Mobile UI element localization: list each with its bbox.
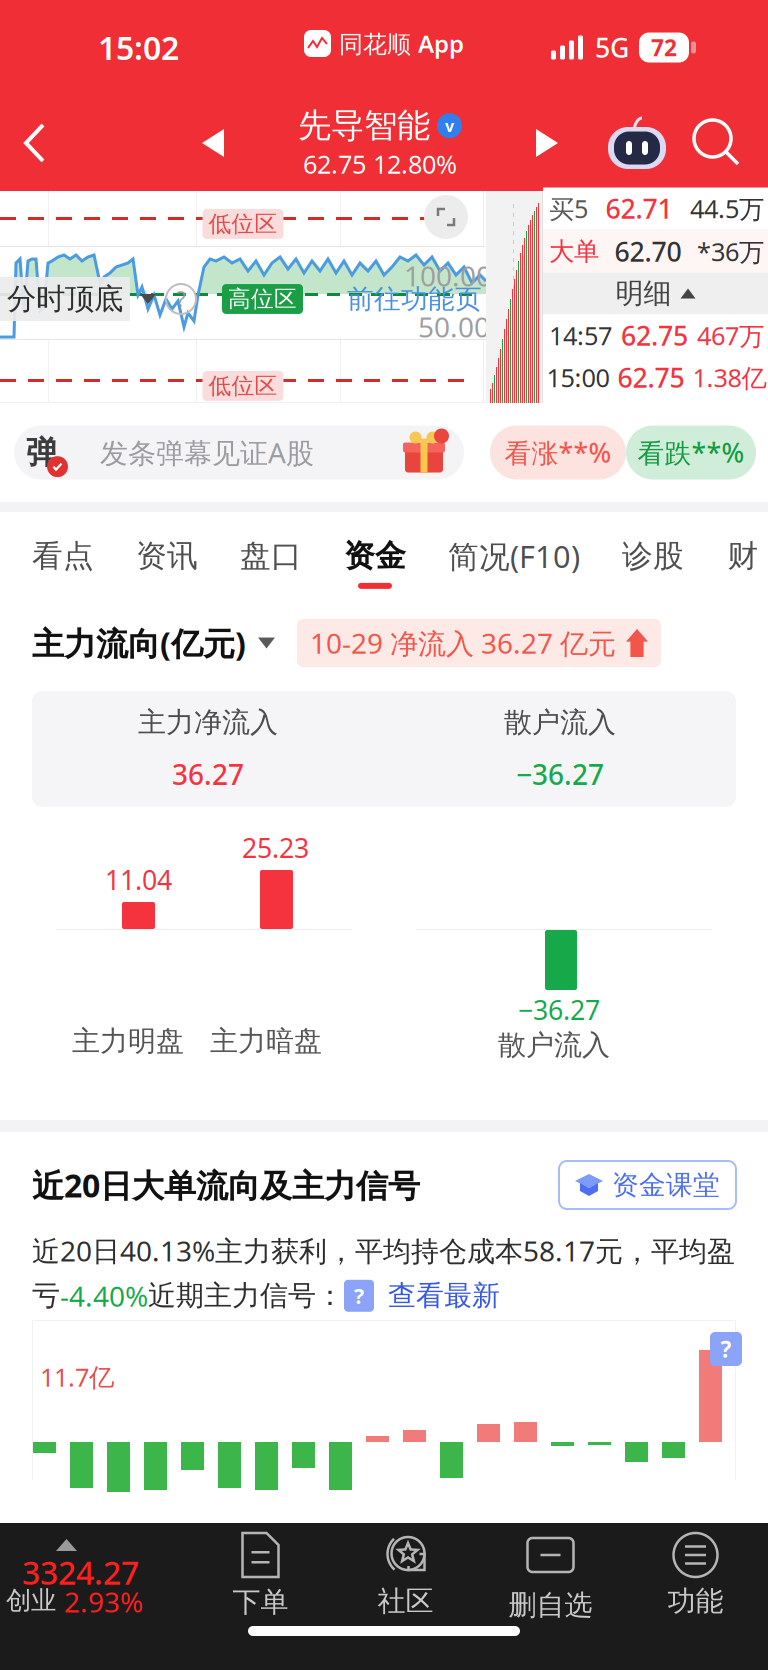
staticText: 11.04 <box>105 862 172 897</box>
staticText: 主力明盘 <box>72 1024 184 1058</box>
staticText: 散户流入 <box>504 705 616 740</box>
button[interactable]: AI assistant <box>606 116 668 170</box>
button[interactable]: Previous stock <box>188 115 238 171</box>
button[interactable]: 财 <box>705 527 768 589</box>
staticText: 5G <box>595 30 629 65</box>
button[interactable]: 资金课堂 <box>559 1161 736 1209</box>
staticText: 72 <box>651 32 677 62</box>
staticText: 低位区 <box>208 210 277 238</box>
button[interactable]: 资讯 <box>115 527 219 589</box>
staticText: −36.27 <box>516 756 604 793</box>
staticText: 62.75 <box>617 360 684 395</box>
staticText: 近期主力信号： <box>148 1279 344 1313</box>
button[interactable]: Back <box>0 100 70 186</box>
staticText: 100.00 <box>404 257 492 294</box>
button[interactable]: 社区 <box>333 1531 478 1631</box>
staticText: 盘口 <box>240 537 302 575</box>
staticText: 下单 <box>232 1585 288 1619</box>
staticText: 简况(F10) <box>448 536 580 576</box>
staticText: 看点 <box>32 537 94 575</box>
staticText: 社区 <box>377 1584 433 1618</box>
staticText: 发条弹幕见证A股 <box>100 434 314 471</box>
staticText: 看跌**% <box>637 435 744 470</box>
staticText: 创业 <box>6 1585 56 1616</box>
staticText: ? <box>354 1282 364 1310</box>
button[interactable]: 弹 <box>14 425 464 479</box>
staticText: 弹 <box>26 433 58 472</box>
staticText: 467万 <box>697 319 764 352</box>
staticText: *36万 <box>697 235 764 268</box>
staticText: 删自选 <box>508 1588 592 1622</box>
staticText: 50.00 <box>418 308 490 345</box>
staticText: 买5 <box>549 192 588 225</box>
button[interactable]: 诊股 <box>601 527 705 589</box>
staticText: 15:02 <box>98 26 179 69</box>
button[interactable]: 查看最新 <box>388 1279 500 1313</box>
staticText: 62.75 12.80% <box>303 147 457 181</box>
staticText: 14:57 <box>549 319 612 352</box>
staticText: ? <box>720 1334 731 1364</box>
button[interactable]: Next stock <box>522 115 572 171</box>
staticText: 明细 <box>615 276 671 311</box>
staticText: 62.71 <box>605 191 672 226</box>
staticText: 分时顶底 <box>7 281 123 317</box>
staticText: 看涨**% <box>504 435 611 470</box>
staticText: 1.38亿 <box>692 361 766 394</box>
staticText: 近20日40.13%主力获利，平均持仓成本58.17元，平均盈 <box>32 1232 735 1269</box>
staticText: 散户流入 <box>498 1028 610 1062</box>
button[interactable]: 主力流向(亿元) <box>32 622 275 664</box>
staticText: ? <box>176 285 185 313</box>
button[interactable]: 看跌**% <box>626 425 756 479</box>
button[interactable]: 简况(F10) <box>427 526 601 590</box>
staticText: 低位区 <box>208 372 277 400</box>
button[interactable]: 3324.27 <box>0 1533 186 1633</box>
button[interactable]: 功能 <box>623 1531 768 1631</box>
button[interactable]: 盘口 <box>219 527 323 589</box>
button[interactable]: 看涨**% <box>490 425 626 479</box>
staticText: 资金 <box>344 537 406 575</box>
button[interactable]: 看点 <box>11 527 115 589</box>
staticText: 近20日大单流向及主力信号 <box>32 1164 420 1206</box>
staticText: 亏 <box>32 1279 60 1313</box>
staticText: 11.7亿 <box>40 1360 114 1394</box>
staticText: v <box>445 115 454 136</box>
staticText: 同花顺 App <box>339 28 464 59</box>
staticText: 15:00 <box>546 361 609 394</box>
staticText: 主力净流入 <box>138 705 278 740</box>
staticText: 高位区 <box>228 285 297 313</box>
staticText: 前往功能页 <box>347 283 482 315</box>
staticText: 主力暗盘 <box>210 1024 322 1058</box>
staticText: 25.23 <box>242 830 309 865</box>
staticText: 10-29 净流入 36.27 亿元 <box>310 624 616 662</box>
button[interactable]: 删自选 <box>478 1531 623 1631</box>
button[interactable]: 资金 <box>323 527 427 589</box>
staticText: 功能 <box>667 1584 723 1618</box>
staticText: 诊股 <box>622 537 684 575</box>
staticText: 44.5万 <box>690 192 764 225</box>
staticText: 查看最新 <box>388 1279 500 1313</box>
staticText: 大单 <box>549 236 599 267</box>
button[interactable]: Search <box>694 120 740 166</box>
staticText: 资讯 <box>136 537 198 575</box>
staticText: 资金课堂 <box>612 1169 720 1201</box>
staticText: 主力流向(亿元) <box>32 622 246 664</box>
staticText: −36.27 <box>518 992 600 1027</box>
staticText: 财 <box>727 537 758 575</box>
staticText: 62.75 <box>621 318 688 353</box>
staticText: 36.27 <box>172 756 244 793</box>
staticText: 先导智能 <box>298 105 430 146</box>
staticText: -4.40% <box>60 1277 148 1314</box>
staticText: 62.70 <box>614 234 681 269</box>
button[interactable]: 下单 <box>188 1531 333 1631</box>
staticText: 3324.27 <box>22 1551 139 1593</box>
staticText: 2.93% <box>64 1583 143 1620</box>
